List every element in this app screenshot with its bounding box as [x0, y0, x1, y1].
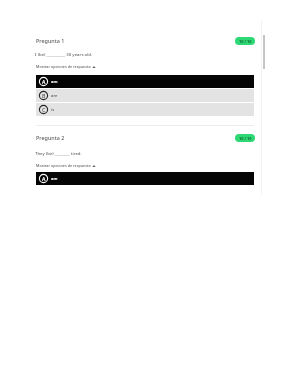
- button[interactable]: C: [36, 103, 254, 116]
- staticText: I (be) __________ 30 years old.: [35, 51, 93, 57]
- staticText: Mostrar opciones de respuesta: [36, 163, 91, 168]
- button[interactable]: Mostrar opciones de respuesta: [36, 163, 96, 168]
- staticText: Pregunta 1: [36, 37, 65, 44]
- button[interactable]: 10 / 10: [235, 37, 255, 45]
- staticText: 10 / 10: [239, 39, 252, 44]
- staticText: Mostrar opciones de respuesta: [36, 64, 91, 69]
- staticText: A: [42, 175, 46, 182]
- button[interactable]: A: [36, 172, 254, 185]
- button[interactable]: 10 / 10: [235, 134, 255, 142]
- staticText: am: [51, 79, 58, 85]
- staticText: A: [42, 78, 46, 85]
- button[interactable]: B: [36, 89, 254, 102]
- staticText: are: [51, 176, 58, 182]
- staticText: B: [42, 92, 46, 99]
- staticText: is: [51, 107, 55, 113]
- button[interactable]: Mostrar opciones de respuesta: [36, 64, 96, 69]
- staticText: They (be) ________ tired.: [35, 150, 82, 156]
- staticText: are: [51, 93, 58, 99]
- button[interactable]: A: [36, 75, 254, 88]
- staticText: 10 / 10: [239, 136, 252, 141]
- staticText: C: [42, 106, 46, 113]
- staticText: Pregunta 2: [36, 134, 65, 141]
